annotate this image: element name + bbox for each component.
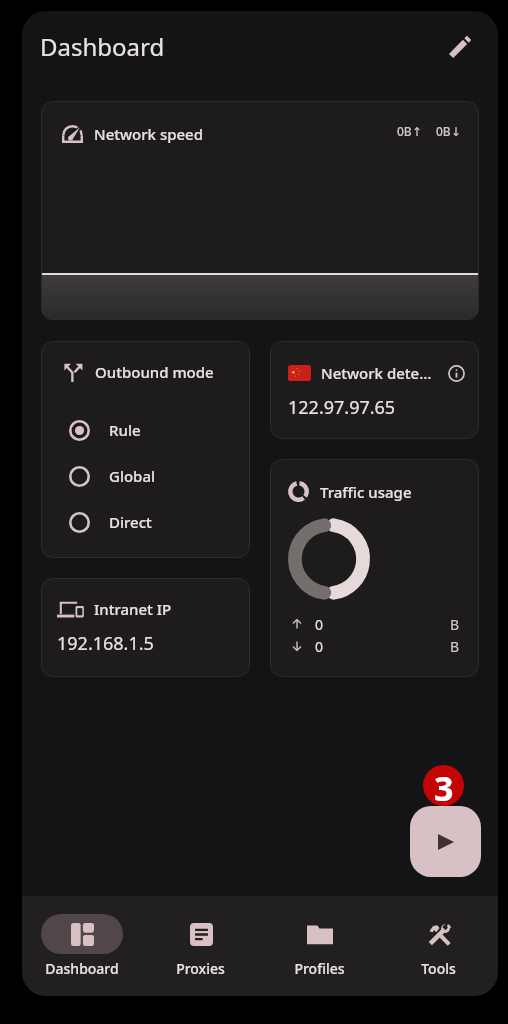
button[interactable]: Outbound mode — [41, 341, 250, 558]
button[interactable]: Edit — [437, 24, 483, 70]
button[interactable]: Profiles — [260, 896, 379, 996]
staticText: Dashboard — [45, 959, 119, 978]
button[interactable]: Traffic usage — [270, 459, 479, 677]
staticText: Tools — [421, 959, 456, 978]
staticText: Rule — [109, 420, 141, 440]
staticText: B — [450, 615, 460, 634]
staticText: 122.97.97.65 — [288, 395, 396, 420]
staticText: Proxies — [176, 959, 225, 978]
button[interactable]: Direct — [41, 499, 250, 545]
staticText: 0B↓ — [436, 123, 461, 139]
button[interactable]: Proxies — [141, 896, 260, 996]
staticText: Network dete… — [321, 363, 432, 383]
staticText: Direct — [109, 512, 152, 532]
button[interactable]: Network dete… — [270, 341, 479, 439]
staticText: Outbound mode — [95, 362, 214, 382]
staticText: 3 — [434, 765, 454, 806]
staticText: Traffic usage — [320, 482, 412, 502]
staticText: Dashboard — [40, 30, 165, 63]
staticText: Global — [109, 466, 156, 486]
button[interactable]: Info — [446, 363, 466, 383]
staticText: 0 — [315, 615, 324, 634]
button[interactable]: Tools — [379, 896, 498, 996]
button[interactable]: Network speed — [41, 101, 479, 320]
staticText: 0 — [315, 637, 324, 656]
button[interactable]: Global — [41, 453, 250, 499]
button[interactable]: Rule — [41, 407, 250, 453]
staticText: 192.168.1.5 — [57, 631, 154, 656]
staticText: Network speed — [94, 124, 204, 144]
staticText: Intranet IP — [94, 599, 172, 619]
staticText: 0B↑ — [397, 123, 422, 139]
staticText: B — [450, 637, 460, 656]
staticText: Profiles — [294, 959, 345, 978]
button[interactable]: Start — [410, 806, 481, 877]
button[interactable]: Intranet IP — [41, 578, 250, 677]
button[interactable]: Dashboard — [22, 896, 141, 996]
